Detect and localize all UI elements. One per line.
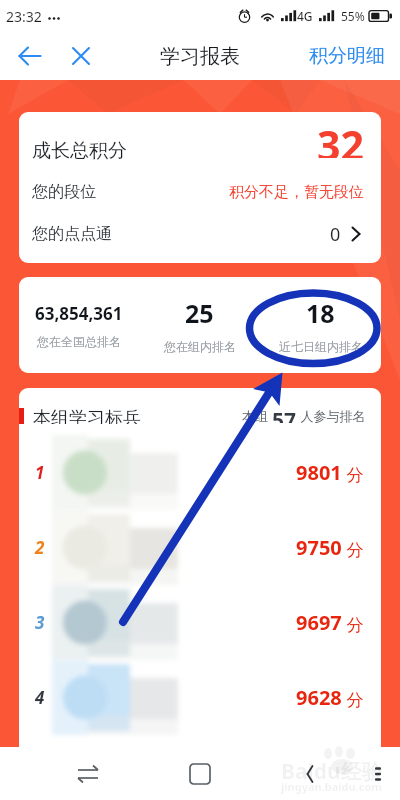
staticText: 18 (306, 296, 335, 330)
staticText: 积分明细 (309, 44, 385, 68)
staticText: 分 (342, 613, 364, 636)
staticText: 3 (35, 611, 45, 634)
staticText: 4 (35, 686, 45, 709)
staticText: 9697 (296, 609, 342, 636)
button[interactable]: 您的点点通 (32, 213, 364, 255)
button[interactable]: 63,854,361 (19, 277, 139, 373)
staticText: 55% (341, 8, 365, 24)
button[interactable]: 您的段位 (32, 171, 364, 213)
staticText: 0 (330, 222, 341, 247)
staticText: 23:32 (6, 7, 42, 26)
staticText: 32 (317, 117, 364, 158)
staticText: Baidu经验 (281, 757, 383, 786)
staticText: 4G (297, 8, 313, 24)
staticText: 您的段位 (32, 182, 96, 202)
staticText: 分 (342, 688, 364, 711)
button[interactable]: Switch apps (66, 752, 110, 796)
staticText: 本组 (242, 407, 272, 424)
staticText: 9628 (296, 684, 342, 711)
staticText: 57 (272, 406, 297, 423)
staticText: 积分不足，暂无段位 (229, 183, 364, 202)
button[interactable]: More options (368, 764, 388, 784)
button[interactable]: Back (8, 34, 52, 78)
staticText: 您的点点通 (32, 224, 112, 244)
staticText: 63,854,361 (35, 302, 123, 325)
staticText: 9801 (296, 459, 342, 486)
staticText: 25 (185, 296, 214, 330)
staticText: 分 (342, 538, 364, 561)
button[interactable]: Close (59, 34, 103, 78)
staticText: 近七日组内排名 (279, 339, 363, 354)
staticText: 2 (35, 536, 45, 559)
button[interactable]: Home (178, 752, 222, 796)
button[interactable]: 3 (19, 585, 381, 660)
button[interactable]: 25 (139, 277, 260, 373)
staticText: 本组学习标兵 (33, 407, 141, 424)
staticText: 学习报表 (160, 44, 240, 69)
staticText: 分 (342, 463, 364, 486)
button[interactable]: Back (287, 752, 331, 796)
staticText: jingyan.baidu.com (281, 779, 383, 794)
staticText: 人参与排名 (297, 407, 366, 424)
button[interactable]: 18 (260, 277, 381, 373)
staticText: 9750 (296, 534, 342, 561)
staticText: 您在全国总排名 (37, 334, 121, 349)
staticText: 1 (35, 461, 45, 484)
button[interactable]: 1 (19, 435, 381, 510)
button[interactable]: 积分明细 (295, 34, 400, 78)
staticText: 成长总积分 (32, 139, 127, 163)
button[interactable]: 2 (19, 510, 381, 585)
staticText: 您在组内排名 (164, 339, 236, 354)
button[interactable]: 4 (19, 660, 381, 735)
